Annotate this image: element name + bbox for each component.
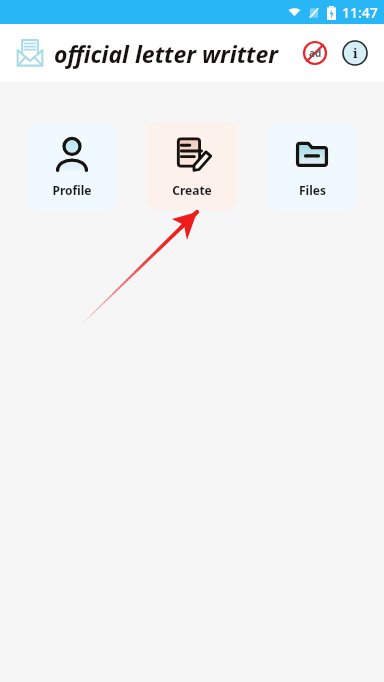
button[interactable]: Create [147,122,237,210]
staticText: official letter writter [54,38,279,69]
button[interactable]: Remove ads [298,36,332,70]
staticText: i [353,44,358,62]
button[interactable]: Information [338,36,372,70]
button[interactable]: Files [267,122,357,210]
staticText: ad [309,46,322,60]
staticText: Create [172,182,212,198]
staticText: Files [299,182,326,198]
staticText: 11:47 [342,3,378,22]
button[interactable]: App logo [12,35,48,71]
button[interactable]: Profile [27,122,117,210]
staticText: Profile [52,182,92,198]
